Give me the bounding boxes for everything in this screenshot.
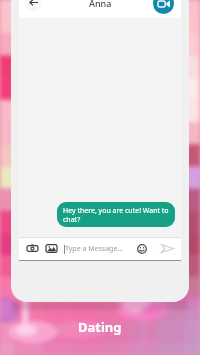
staticText: Anna [89, 0, 112, 9]
staticText: Hey there, you are cute! Want to chat? [63, 206, 169, 224]
button[interactable]: Send [160, 241, 175, 256]
button[interactable]: Back [25, 0, 42, 11]
button[interactable]: Video call [153, 0, 174, 14]
button[interactable]: Emoji [134, 241, 149, 256]
staticText: Dating [78, 318, 122, 336]
button[interactable]: Gallery [44, 241, 59, 256]
staticText: Type a Message... [65, 244, 123, 254]
button[interactable]: Hey there, you are cute! Want to chat? [57, 202, 175, 227]
button[interactable]: Camera [25, 241, 40, 256]
